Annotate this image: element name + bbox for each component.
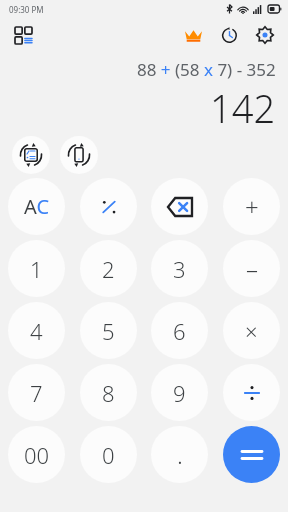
staticText: 1 <box>30 254 43 284</box>
button[interactable]: Premium <box>178 20 208 50</box>
button[interactable]: All clear <box>8 178 65 235</box>
button[interactable]: Layout <box>8 20 38 50</box>
button[interactable]: Equals <box>223 426 280 483</box>
staticText: – <box>246 252 258 285</box>
staticText: 88 + (58 x 7) - 352 <box>137 58 276 81</box>
button[interactable]: – <box>223 240 280 297</box>
button[interactable]: 6 <box>151 302 208 359</box>
staticText: 9 <box>173 378 186 408</box>
button[interactable]: 8 <box>80 364 137 421</box>
button[interactable]: 2 <box>80 240 137 297</box>
staticText: × <box>245 316 258 346</box>
button[interactable]: 3 <box>151 240 208 297</box>
staticText: 00 <box>24 440 50 470</box>
staticText: 5 <box>102 316 115 346</box>
button[interactable]: 00 <box>8 426 65 483</box>
staticText: . <box>177 438 183 471</box>
button[interactable]: History <box>214 20 244 50</box>
button[interactable]: 7 <box>8 364 65 421</box>
button[interactable]: Divide <box>223 364 280 421</box>
staticText: 0 <box>102 440 115 470</box>
button[interactable]: + <box>223 178 280 235</box>
staticText: 4 <box>30 316 43 346</box>
button[interactable]: 9 <box>151 364 208 421</box>
button[interactable]: Converter <box>12 136 50 174</box>
button[interactable]: Rotate screen <box>60 136 98 174</box>
button[interactable]: 5 <box>80 302 137 359</box>
staticText: 8 <box>102 378 115 408</box>
button[interactable]: . <box>151 426 208 483</box>
staticText: 6 <box>173 316 186 346</box>
button[interactable]: Backspace <box>151 178 208 235</box>
button[interactable]: Percent <box>80 178 137 235</box>
staticText: 09:30 PM <box>9 4 44 15</box>
button[interactable]: 4 <box>8 302 65 359</box>
button[interactable]: × <box>223 302 280 359</box>
button[interactable]: 0 <box>80 426 137 483</box>
button[interactable]: Settings <box>250 20 280 50</box>
staticText: 142 <box>210 82 276 126</box>
staticText: 2 <box>102 254 115 284</box>
staticText: 3 <box>173 254 186 284</box>
staticText: 7 <box>30 378 43 408</box>
button[interactable]: 1 <box>8 240 65 297</box>
staticText: + <box>245 190 259 223</box>
staticText: AC <box>24 193 50 220</box>
